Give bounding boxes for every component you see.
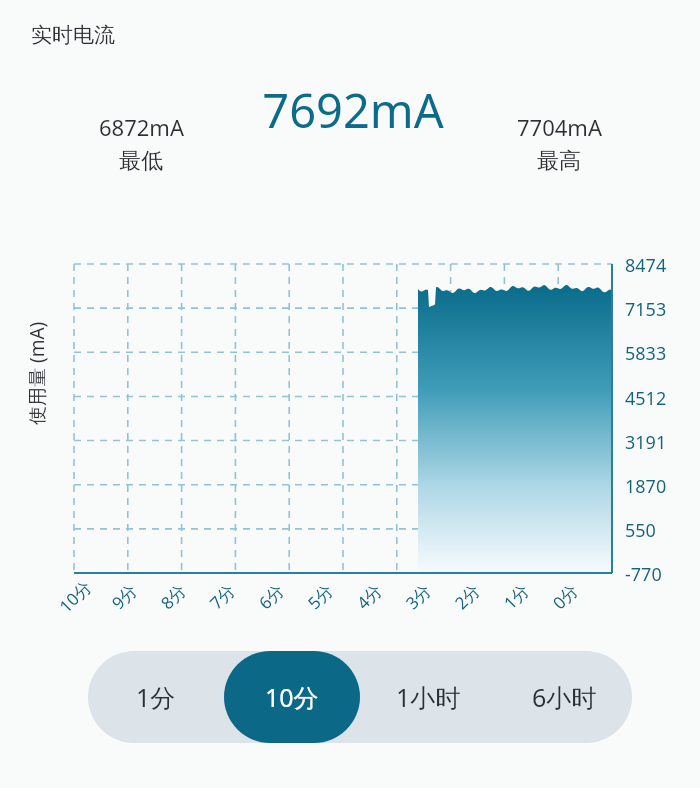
staticText: 8474 <box>625 253 667 278</box>
staticText: 6872mA <box>99 112 184 142</box>
staticText: 5833 <box>625 341 667 366</box>
button[interactable]: 10分 <box>224 651 360 743</box>
staticText: 1分 <box>492 572 540 621</box>
button[interactable]: 6小时 <box>496 651 632 743</box>
staticText: 2分 <box>443 572 491 621</box>
button[interactable]: 1小时 <box>360 651 496 743</box>
staticText: 最低 <box>119 147 163 175</box>
staticText: 3191 <box>625 430 667 455</box>
staticText: 7692mA <box>256 78 450 142</box>
staticText: 实时电流 <box>31 22 115 48</box>
staticText: 10分 <box>51 572 99 621</box>
staticText: 0分 <box>541 572 589 621</box>
staticText: 4512 <box>625 386 667 411</box>
staticText: 6分 <box>247 572 295 621</box>
staticText: 7704mA <box>517 112 602 142</box>
staticText: 使用量 (mA) <box>24 321 50 425</box>
staticText: 8分 <box>149 572 197 621</box>
staticText: 4分 <box>345 572 393 621</box>
button[interactable]: 1分 <box>88 651 224 743</box>
staticText: 5分 <box>296 572 344 621</box>
staticText: 最高 <box>537 147 581 175</box>
staticText: 1分 <box>136 680 176 714</box>
staticText: 1小时 <box>396 680 461 714</box>
staticText: 6小时 <box>532 680 597 714</box>
staticText: 10分 <box>265 680 319 714</box>
staticText: 7分 <box>198 572 246 621</box>
staticText: -770 <box>625 562 662 587</box>
staticText: 7153 <box>625 297 667 322</box>
staticText: 1870 <box>625 474 667 499</box>
staticText: 550 <box>625 518 656 543</box>
staticText: 9分 <box>100 572 148 621</box>
staticText: 3分 <box>394 572 442 621</box>
